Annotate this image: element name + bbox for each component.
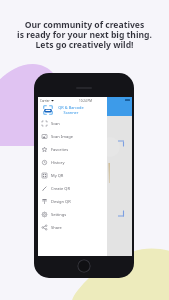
button[interactable]: History xyxy=(38,156,107,169)
button[interactable]: Design QR xyxy=(38,195,107,208)
staticText: Create QR xyxy=(51,186,70,191)
staticText: 10:24 PM xyxy=(79,99,92,103)
staticText: Carrier xyxy=(40,99,50,103)
button[interactable]: Favorites xyxy=(38,143,107,156)
staticText: Scan Image xyxy=(51,134,73,139)
button[interactable]: Settings xyxy=(38,208,107,221)
staticText: Our community of creatives is ready for … xyxy=(17,19,152,51)
staticText: Share xyxy=(51,225,62,230)
button[interactable]: Share xyxy=(38,221,107,234)
staticText: History xyxy=(51,160,65,165)
button[interactable]: Create QR xyxy=(38,182,107,195)
staticText: Settings xyxy=(51,212,67,217)
staticText: QR & Barcode Scanner xyxy=(58,105,84,115)
button[interactable]: Scan Image xyxy=(38,130,107,143)
button[interactable]: Scan xyxy=(38,117,107,130)
other: Home xyxy=(77,259,91,273)
staticText: Design QR xyxy=(51,199,71,204)
staticText: Favorites xyxy=(51,147,69,152)
staticText: My QR xyxy=(51,173,64,178)
staticText: Scan xyxy=(51,121,60,126)
button[interactable]: My QR xyxy=(38,169,107,182)
